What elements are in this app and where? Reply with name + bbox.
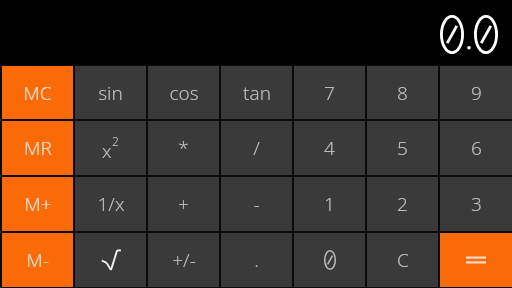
staticText: 9 xyxy=(471,80,482,106)
button[interactable]: Equals xyxy=(440,233,512,287)
staticText: . xyxy=(254,247,259,273)
button[interactable]: - xyxy=(221,177,292,231)
button[interactable]: x xyxy=(75,121,146,175)
staticText: + xyxy=(178,191,189,217)
staticText: 7 xyxy=(324,80,335,106)
button[interactable]: 5 xyxy=(367,121,438,175)
button[interactable]: M- xyxy=(2,233,73,287)
button[interactable]: 7 xyxy=(294,66,365,119)
staticText: C xyxy=(397,247,409,273)
button[interactable]: cos xyxy=(148,66,219,119)
staticText: / xyxy=(253,135,260,161)
button[interactable]: tan xyxy=(221,66,292,119)
staticText: 5 xyxy=(397,135,408,161)
staticText: MR xyxy=(24,135,52,161)
button[interactable]: 6 xyxy=(440,121,512,175)
staticText: 2 xyxy=(397,191,408,217)
button[interactable]: + xyxy=(148,177,219,231)
button[interactable] xyxy=(294,233,365,287)
staticText: 3 xyxy=(471,191,482,217)
staticText: 1 xyxy=(324,191,335,217)
button[interactable]: 1/x xyxy=(75,177,146,231)
button[interactable]: 9 xyxy=(440,66,512,119)
button[interactable]: +/- xyxy=(148,233,219,287)
staticText: 2 xyxy=(112,133,119,149)
staticText: 1/x xyxy=(97,191,125,217)
button[interactable]: 2 xyxy=(367,177,438,231)
button[interactable]: 8 xyxy=(367,66,438,119)
button[interactable]: 4 xyxy=(294,121,365,175)
staticText: x xyxy=(102,138,112,164)
button[interactable]: MR xyxy=(2,121,73,175)
button[interactable]: / xyxy=(221,121,292,175)
button[interactable]: 3 xyxy=(440,177,512,231)
staticText: sin xyxy=(98,80,123,106)
staticText: 6 xyxy=(471,135,482,161)
button[interactable]: sin xyxy=(75,66,146,119)
button[interactable]: M+ xyxy=(2,177,73,231)
staticText: M- xyxy=(26,247,49,273)
button[interactable]: 1 xyxy=(294,177,365,231)
button[interactable]: * xyxy=(148,121,219,175)
staticText: 8 xyxy=(397,80,408,106)
staticText: - xyxy=(253,191,260,217)
staticText: +/- xyxy=(172,247,196,273)
staticText: tan xyxy=(243,80,271,106)
staticText: M+ xyxy=(24,191,52,217)
button[interactable]: Square root xyxy=(75,233,146,287)
staticText: * xyxy=(178,135,189,161)
button[interactable]: C xyxy=(367,233,438,287)
button[interactable]: MC xyxy=(2,66,73,119)
staticText: 4 xyxy=(324,135,335,161)
staticText: MC xyxy=(23,80,52,106)
staticText: cos xyxy=(169,80,199,106)
